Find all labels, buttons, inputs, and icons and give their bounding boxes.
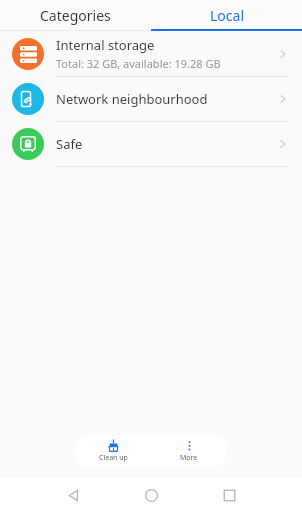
button[interactable]: Back	[44, 478, 102, 512]
button[interactable]: Categories	[0, 0, 151, 31]
button[interactable]: Internal storage	[0, 31, 302, 76]
staticText: Total: 32 GB, available: 19.28 GB	[56, 56, 221, 71]
button[interactable]: Recent apps	[200, 478, 258, 512]
staticText: Internal storage	[56, 36, 155, 54]
staticText: Local	[210, 6, 244, 25]
button[interactable]: Safe	[0, 122, 302, 166]
staticText: Clean up	[99, 453, 128, 463]
button[interactable]: Local	[151, 0, 302, 31]
staticText: Categories	[40, 6, 111, 25]
button[interactable]: Clean up	[75, 435, 151, 467]
button[interactable]: Network neighbourhood	[0, 77, 302, 121]
staticText: Network neighbourhood	[56, 90, 208, 108]
button[interactable]: Home	[122, 478, 180, 512]
staticText: Safe	[56, 135, 83, 153]
staticText: More	[180, 453, 198, 463]
button[interactable]: More	[151, 435, 227, 467]
